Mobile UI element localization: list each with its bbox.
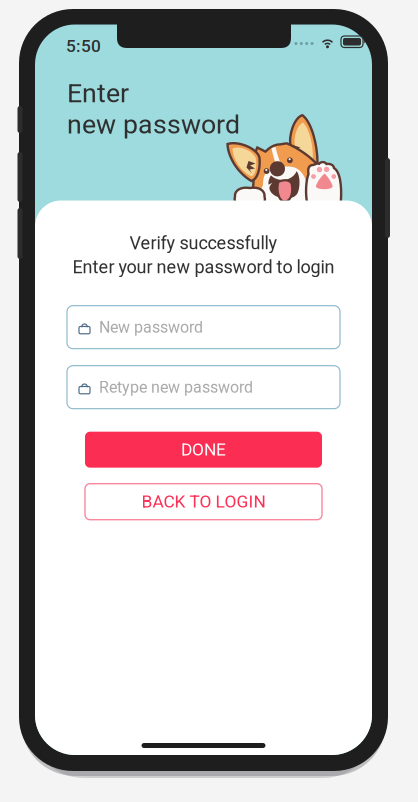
staticText: BACK TO LOGIN [141, 491, 265, 512]
button[interactable]: DONE [85, 432, 322, 468]
staticText: DONE [181, 439, 226, 460]
staticText: 5:50 [66, 36, 101, 56]
button[interactable]: BACK TO LOGIN [85, 484, 322, 520]
staticText: New password [99, 318, 203, 337]
staticText: Enter new password [67, 77, 240, 140]
staticText: Retype new password [99, 378, 253, 397]
button[interactable]: New password [67, 306, 340, 349]
button[interactable]: Retype new password [67, 366, 340, 409]
staticText: Enter your new password to login [72, 257, 334, 278]
staticText: Verify successfully [129, 232, 277, 254]
